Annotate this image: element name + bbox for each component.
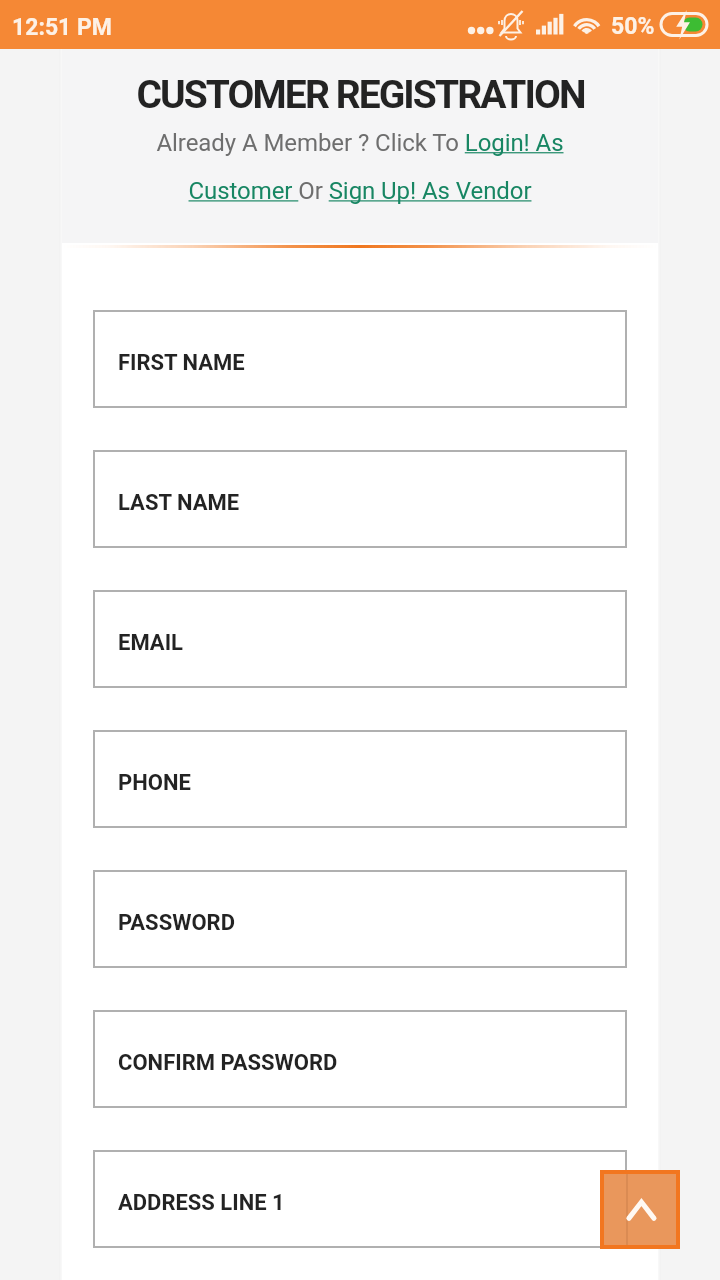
staticText: PHONE — [118, 770, 191, 796]
staticText: PASSWORD — [118, 910, 235, 936]
button[interactable]: PASSWORD — [93, 870, 627, 968]
staticText: ADDRESS LINE 1 — [118, 1190, 285, 1216]
staticText: 12:51 PM — [12, 14, 112, 41]
button[interactable]: ADDRESS LINE 1 — [93, 1150, 627, 1248]
button[interactable]: Scroll to top — [604, 1174, 676, 1245]
staticText: CUSTOMER REGISTRATION — [136, 72, 585, 118]
button[interactable]: FIRST NAME — [93, 310, 627, 408]
staticText: CONFIRM PASSWORD — [118, 1050, 338, 1076]
button[interactable]: PHONE — [93, 730, 627, 828]
staticText: Already A Member ? Click To Login! As Cu… — [152, 129, 568, 205]
staticText: EMAIL — [118, 630, 183, 656]
button[interactable]: Login! As Customer Or Sign Up! As Vendor — [152, 129, 568, 205]
staticText: 50% — [611, 13, 655, 40]
button[interactable]: EMAIL — [93, 590, 627, 688]
staticText: LAST NAME — [118, 490, 240, 516]
button[interactable]: LAST NAME — [93, 450, 627, 548]
button[interactable]: CONFIRM PASSWORD — [93, 1010, 627, 1108]
staticText: FIRST NAME — [118, 350, 245, 376]
